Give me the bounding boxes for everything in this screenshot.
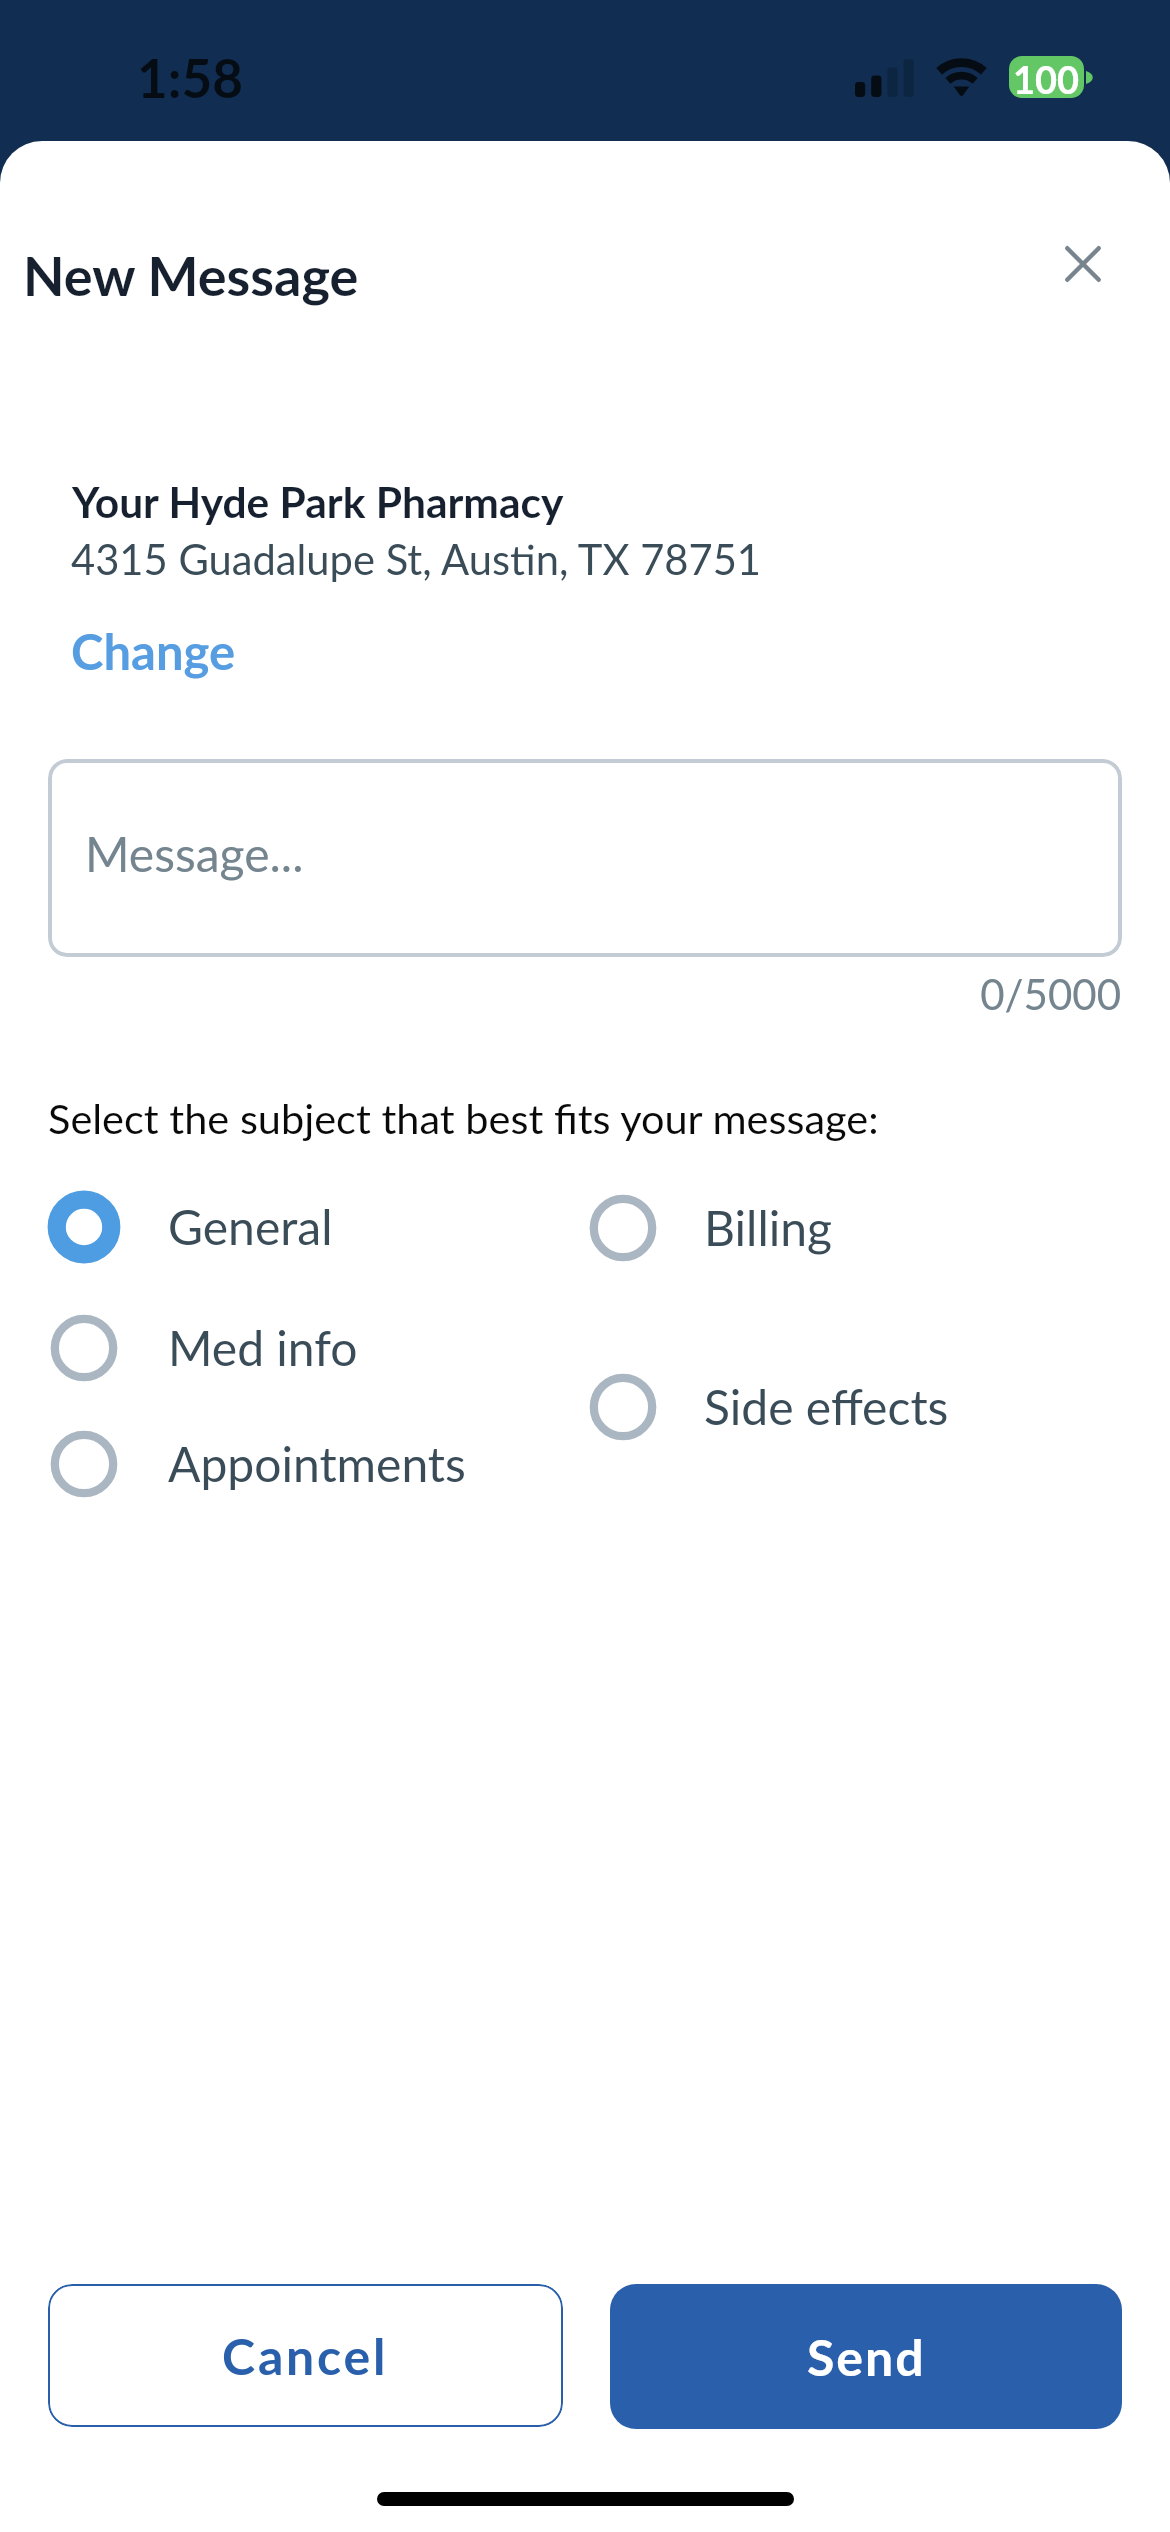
button[interactable]: Send xyxy=(610,2284,1122,2429)
button[interactable]: Med info xyxy=(36,1300,358,1396)
staticText: Your Hyde Park Pharmacy xyxy=(72,476,564,527)
button[interactable]: Side effects xyxy=(575,1359,949,1455)
button[interactable]: Appointments xyxy=(36,1416,466,1512)
staticText: General xyxy=(168,1198,333,1256)
button[interactable]: Close xyxy=(1038,219,1128,309)
staticText: 100 xyxy=(1013,56,1080,98)
button[interactable]: General xyxy=(36,1179,333,1275)
staticText: 4315 Guadalupe St, Austin, TX 78751 xyxy=(71,534,762,584)
staticText: Billing xyxy=(704,1199,832,1257)
staticText: 1:58 xyxy=(137,46,243,110)
staticText: Send xyxy=(807,2327,926,2387)
staticText: 0/5000 xyxy=(0,969,1121,1019)
staticText: Cancel xyxy=(222,2326,389,2386)
staticText: Select the subject that best fits your m… xyxy=(48,1093,879,1143)
staticText: Change xyxy=(71,622,236,681)
staticText: Med info xyxy=(168,1319,358,1377)
staticText: Message... xyxy=(85,825,304,883)
button[interactable]: Change xyxy=(71,622,236,681)
staticText: Side effects xyxy=(704,1378,949,1436)
button[interactable]: Billing xyxy=(575,1180,832,1276)
staticText: New Message xyxy=(23,243,359,308)
button[interactable]: Message input field xyxy=(48,759,1122,957)
staticText: Appointments xyxy=(168,1435,466,1493)
button[interactable]: Cancel xyxy=(48,2284,563,2427)
